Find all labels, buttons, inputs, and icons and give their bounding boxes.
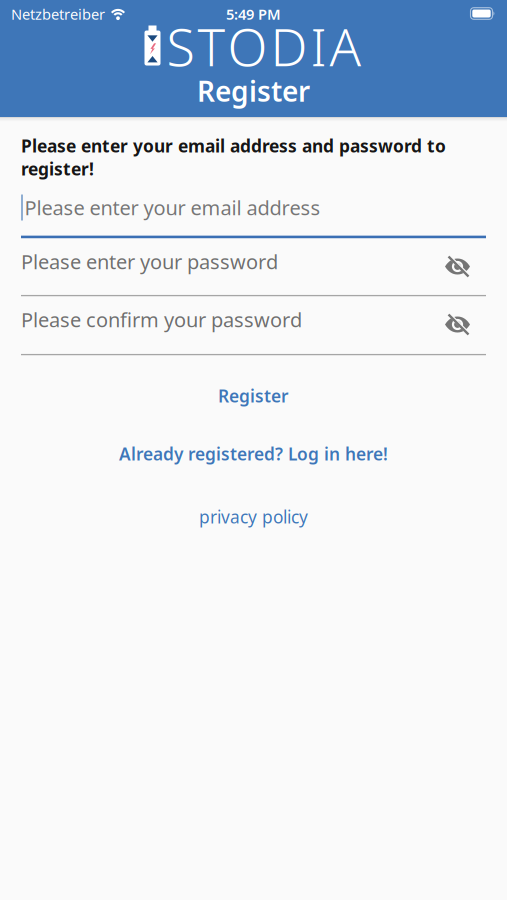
staticText: Please confirm your password xyxy=(21,306,302,333)
staticText: STODIA xyxy=(166,11,361,81)
staticText: Register xyxy=(218,384,289,407)
staticText: Please enter your email address and pass… xyxy=(21,134,446,157)
button[interactable]: Please enter your password xyxy=(21,248,486,296)
button[interactable]: Please confirm your password xyxy=(21,306,486,355)
staticText: privacy policy xyxy=(199,505,308,528)
button[interactable]: Register xyxy=(218,384,289,407)
staticText: Please enter your password xyxy=(21,248,278,275)
button[interactable] xyxy=(445,314,486,335)
staticText: Already registered? Log in here! xyxy=(119,442,388,465)
button[interactable]: Please enter your email address xyxy=(21,194,486,238)
staticText: Register xyxy=(197,72,310,110)
staticText: Netzbetreiber xyxy=(11,4,105,24)
staticText: 5:49 PM xyxy=(226,4,281,24)
button[interactable]: Already registered? Log in here! xyxy=(119,442,388,465)
button[interactable] xyxy=(445,256,486,277)
staticText: Please enter your email address xyxy=(24,194,320,221)
staticText: register! xyxy=(21,157,94,180)
button[interactable]: privacy policy xyxy=(199,505,308,528)
